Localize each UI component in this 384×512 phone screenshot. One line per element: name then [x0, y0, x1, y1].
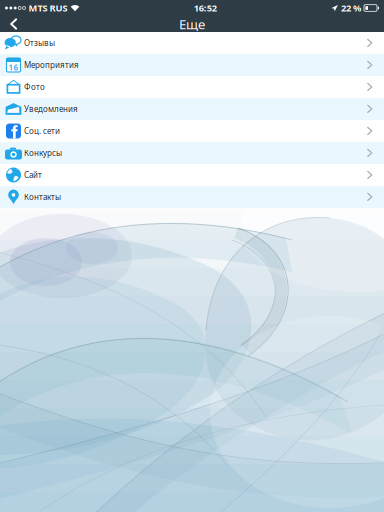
button[interactable]: Уведомления [0, 98, 384, 120]
staticText: Фото [24, 82, 45, 92]
staticText: 16 [8, 62, 18, 72]
button[interactable]: Отзывы [0, 32, 384, 54]
staticText: Конкурсы [24, 148, 62, 158]
staticText: 22 % [341, 2, 361, 14]
staticText: MTS RUS [28, 2, 67, 14]
button[interactable]: Соц. сети [0, 120, 384, 142]
button[interactable]: 16 [0, 54, 384, 76]
button[interactable]: Конкурсы [0, 142, 384, 164]
button[interactable]: Back [0, 16, 27, 31]
staticText: Уведомления [24, 104, 78, 114]
button[interactable]: Фото [0, 76, 384, 98]
staticText: Сайт [24, 170, 42, 180]
staticText: Соц. сети [24, 126, 60, 136]
staticText: Контакты [24, 192, 61, 202]
staticText: Еще [179, 15, 205, 33]
staticText: 16:52 [194, 2, 217, 14]
staticText: Отзывы [24, 38, 55, 48]
staticText: Мероприятия [24, 60, 79, 70]
button[interactable]: Сайт [0, 164, 384, 186]
button[interactable]: Контакты [0, 186, 384, 208]
